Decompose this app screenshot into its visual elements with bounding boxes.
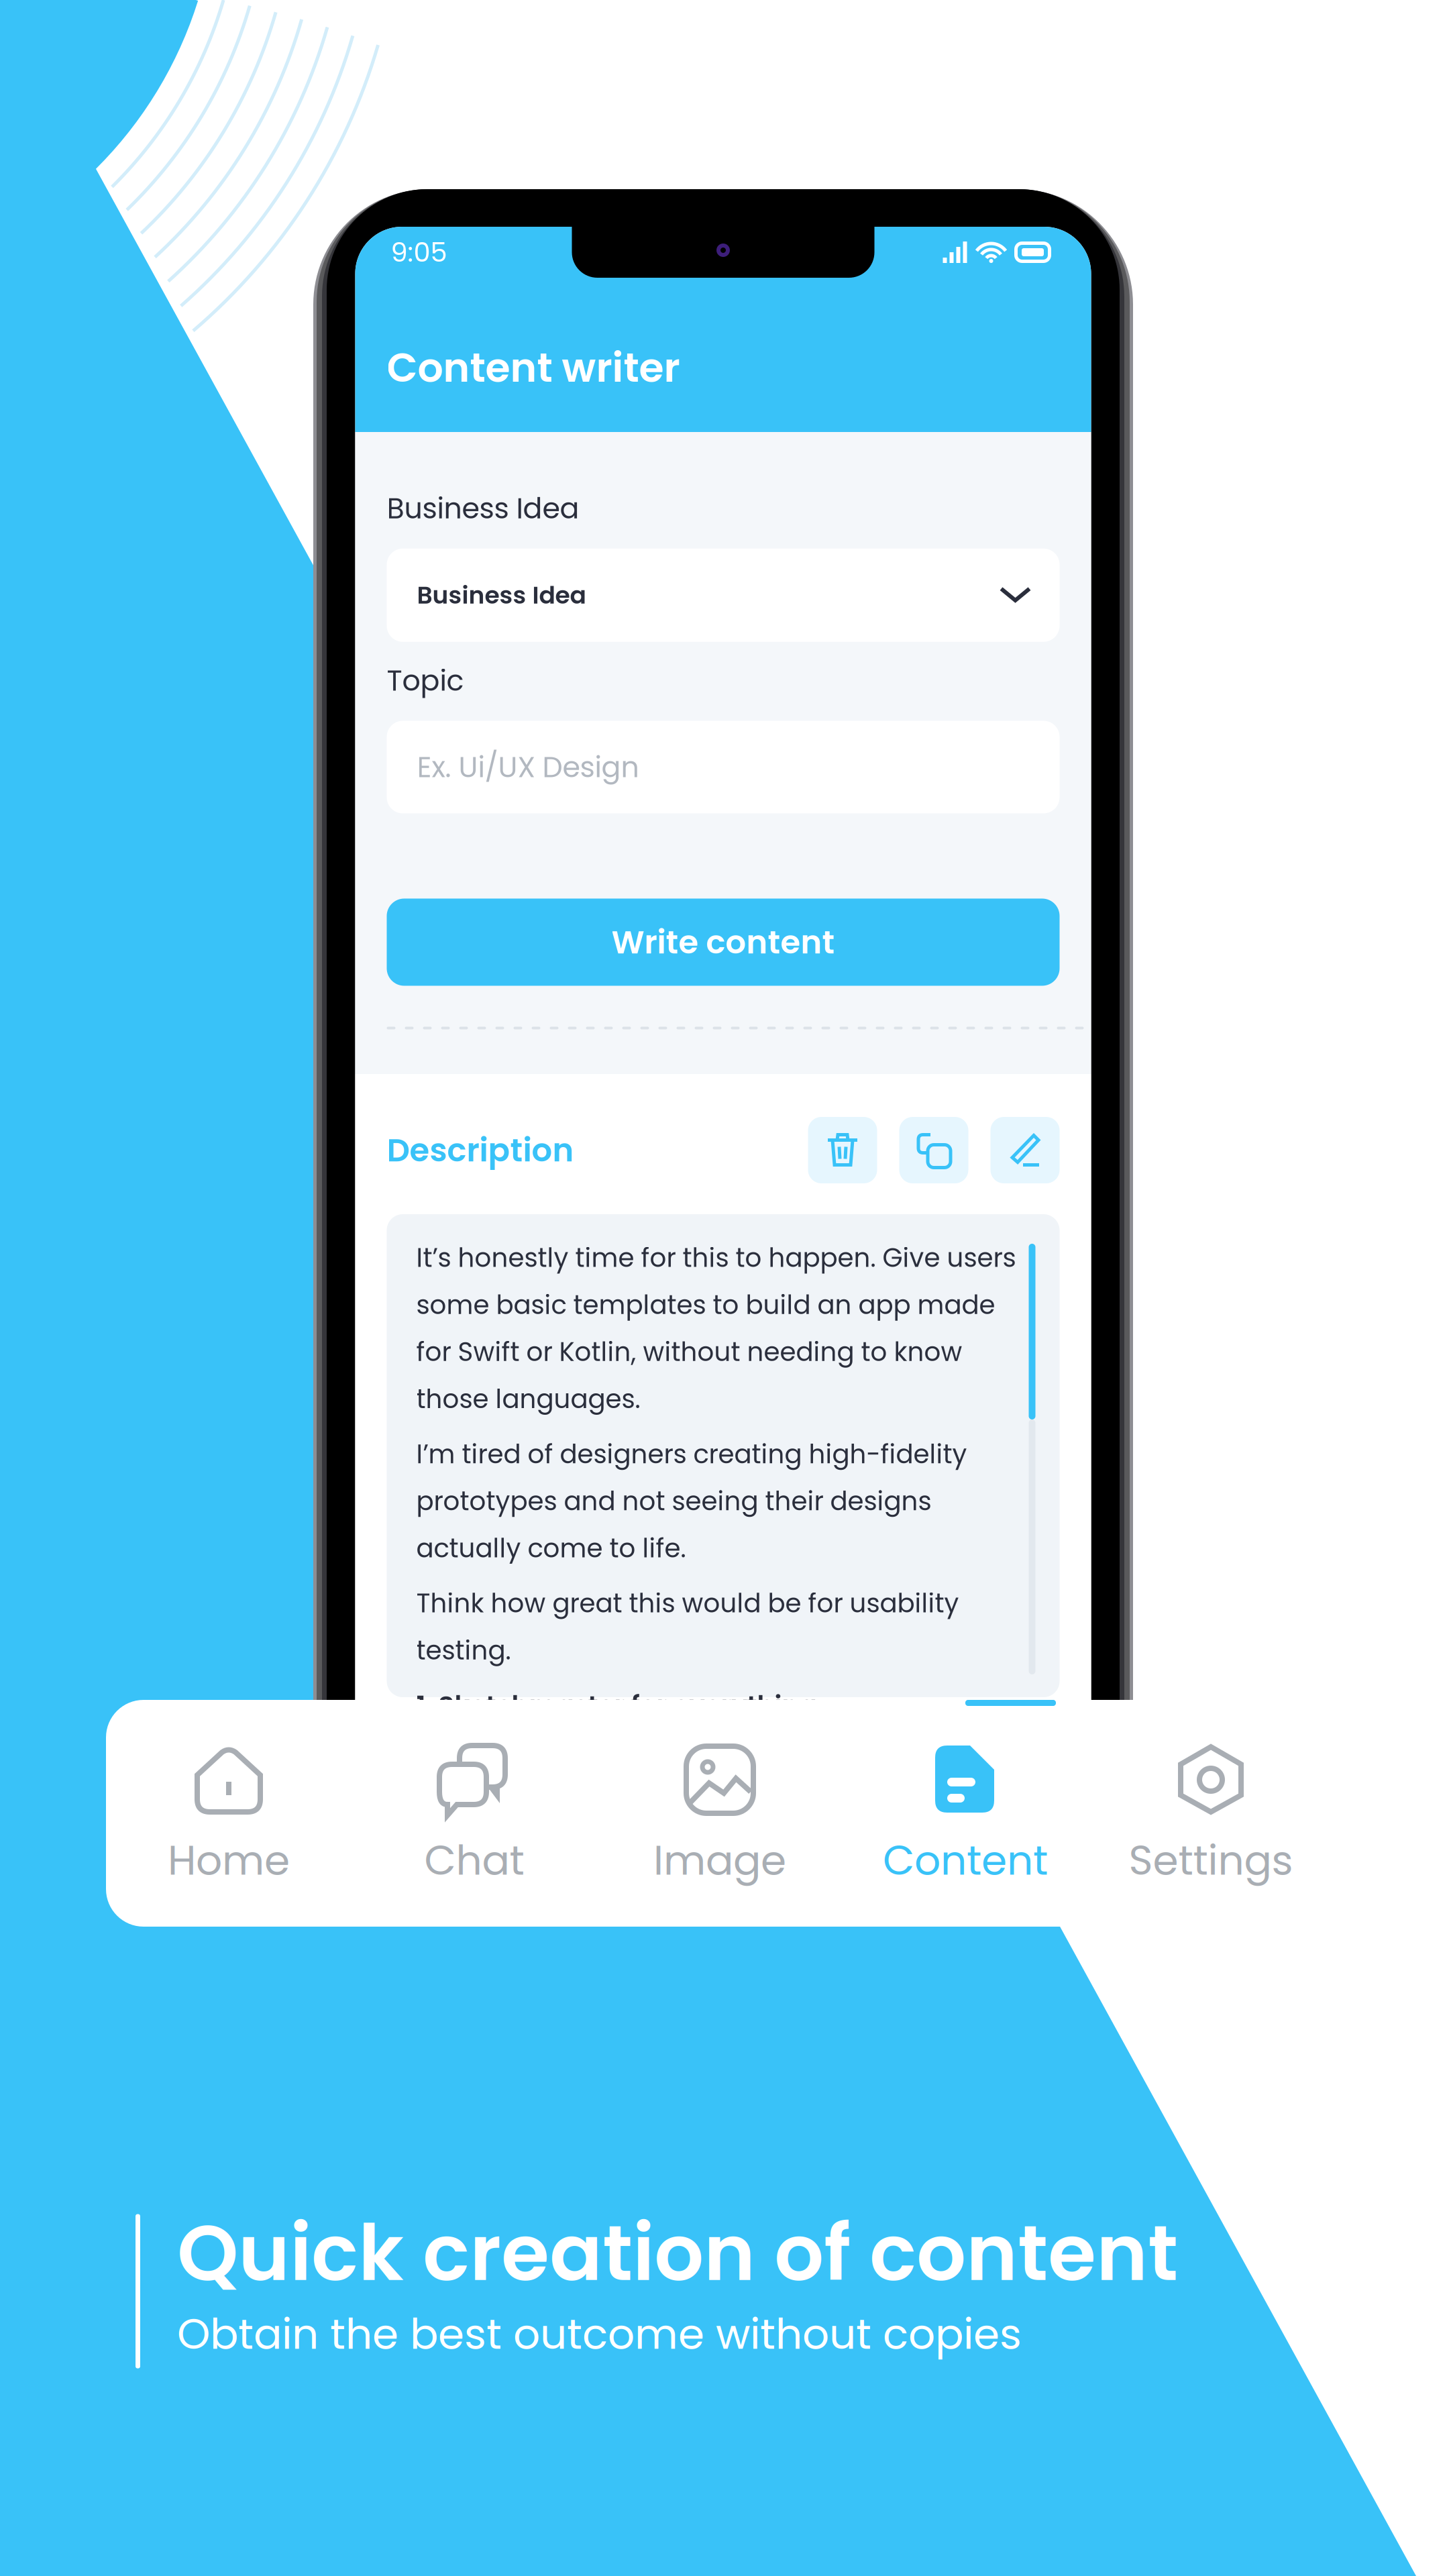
- button[interactable]: Image: [597, 1700, 843, 1927]
- staticText: 9:05: [391, 233, 447, 271]
- staticText: It’s honestly time for this to happen. G…: [416, 1240, 1016, 1417]
- staticText: Ex. Ui/UX Design: [417, 747, 639, 787]
- staticText: Content: [883, 1831, 1048, 1889]
- button[interactable]: Chat: [352, 1700, 597, 1927]
- staticText: Think how great this would be for usabil…: [416, 1585, 959, 1668]
- staticText: Settings: [1129, 1831, 1293, 1889]
- button[interactable]: Content: [843, 1700, 1088, 1927]
- staticText: Quick creation of content: [177, 2198, 1178, 2307]
- staticText: Obtain the best outcome without copies: [177, 2305, 1022, 2363]
- staticText: Content writer: [387, 339, 680, 396]
- button[interactable]: Settings: [1088, 1700, 1334, 1927]
- button[interactable]: Delete: [808, 1117, 877, 1183]
- staticText: Business Idea: [417, 578, 586, 612]
- staticText: Chat: [424, 1831, 524, 1889]
- button[interactable]: Home: [106, 1700, 352, 1927]
- staticText: Home: [168, 1831, 290, 1889]
- staticText: Business Idea: [387, 488, 579, 528]
- staticText: Topic: [387, 661, 464, 701]
- staticText: I’m tired of designers creating high-fid…: [416, 1436, 967, 1566]
- staticText: Description: [387, 1128, 574, 1173]
- staticText: Image: [653, 1831, 786, 1889]
- staticText: 1. Sketchmaster for everything: [416, 1687, 817, 1724]
- button[interactable]: Edit: [990, 1117, 1060, 1183]
- staticText: Write content: [611, 920, 835, 965]
- button[interactable]: Copy: [899, 1117, 968, 1183]
- button[interactable]: Write content: [387, 899, 1060, 986]
